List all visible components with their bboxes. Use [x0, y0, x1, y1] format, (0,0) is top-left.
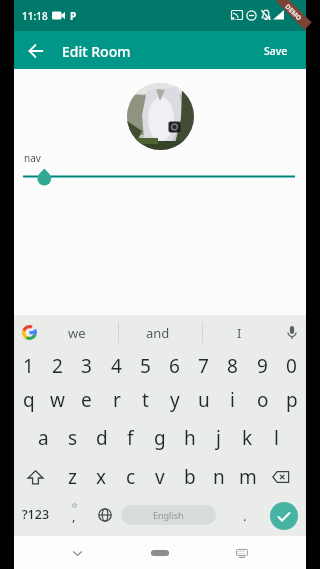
button[interactable]: k	[233, 420, 262, 455]
button[interactable]: n	[204, 459, 233, 495]
staticText: Save	[264, 44, 288, 58]
staticText: Edit Room	[62, 42, 131, 60]
staticText: 9	[257, 353, 268, 379]
button[interactable]: ?123	[21, 498, 51, 531]
staticText: g	[154, 425, 166, 451]
staticText: j	[216, 425, 221, 451]
button[interactable]	[266, 461, 296, 493]
staticText: l	[274, 425, 279, 451]
staticText: 4	[111, 353, 122, 379]
staticText: b	[184, 464, 196, 490]
staticText: 8	[227, 353, 238, 379]
button[interactable]: 2	[43, 349, 72, 382]
button[interactable]: 9	[248, 349, 277, 382]
button[interactable]	[91, 500, 119, 530]
button[interactable]: 5	[131, 349, 160, 382]
staticText: English	[153, 509, 184, 521]
button[interactable]: b	[175, 459, 204, 495]
staticText: DEMO	[283, 2, 304, 23]
staticText: and	[146, 324, 170, 342]
button[interactable]: q	[14, 382, 43, 417]
button[interactable]: x	[87, 459, 116, 495]
button[interactable]: c	[116, 459, 145, 495]
staticText: u	[198, 387, 210, 413]
button[interactable]: w	[43, 382, 72, 417]
button[interactable]	[278, 318, 306, 347]
button[interactable]	[21, 165, 297, 189]
button[interactable]: m	[233, 459, 262, 495]
button[interactable]: 8	[218, 349, 247, 382]
button[interactable]: z	[58, 459, 87, 495]
staticText: 5	[140, 353, 151, 379]
button[interactable]: 1	[14, 349, 43, 382]
button[interactable]: l	[262, 420, 291, 455]
button[interactable]: 0	[277, 349, 306, 382]
staticText: ?123	[22, 506, 50, 523]
staticText: 1	[23, 353, 34, 379]
button[interactable]	[270, 502, 298, 530]
button[interactable]: r	[102, 382, 131, 417]
staticText: q	[23, 387, 35, 413]
staticText: 2	[52, 353, 63, 379]
button[interactable]: d	[87, 420, 116, 455]
button[interactable]: we	[51, 318, 103, 347]
staticText: nav	[24, 151, 41, 164]
staticText: x	[96, 464, 107, 490]
staticText: we	[68, 324, 86, 342]
button[interactable]: 6	[160, 349, 189, 382]
button[interactable]	[64, 540, 90, 566]
staticText: w	[50, 387, 65, 413]
button[interactable]	[127, 83, 194, 150]
button[interactable]: p	[277, 382, 306, 417]
staticText: 3	[81, 353, 92, 379]
button[interactable]: ,	[62, 498, 86, 534]
button[interactable]: u	[189, 382, 218, 417]
staticText: k	[242, 425, 253, 451]
button[interactable]: 7	[189, 349, 218, 382]
button[interactable]: v	[145, 459, 174, 495]
staticText: 11:18	[22, 9, 48, 23]
button[interactable]: 3	[72, 349, 101, 382]
staticText: f	[127, 425, 134, 451]
staticText: m	[239, 464, 257, 490]
staticText: h	[184, 425, 196, 451]
staticText: c	[126, 464, 136, 490]
button[interactable]: .	[232, 498, 258, 534]
staticText: 7	[198, 353, 209, 379]
button[interactable]: h	[175, 420, 204, 455]
button[interactable]: and	[125, 318, 191, 347]
button[interactable]	[151, 550, 169, 556]
staticText: p	[286, 387, 298, 413]
button[interactable]	[229, 540, 255, 566]
staticText: 0	[286, 353, 297, 379]
button[interactable]: I	[206, 318, 272, 347]
staticText: o	[257, 387, 269, 413]
staticText: i	[230, 387, 235, 413]
button[interactable]: j	[204, 420, 233, 455]
button[interactable]	[20, 461, 50, 493]
button[interactable]: Save	[256, 41, 296, 60]
staticText: I	[237, 324, 242, 342]
staticText: 6	[169, 353, 180, 379]
button[interactable]	[15, 317, 43, 347]
button[interactable]: 4	[102, 349, 131, 382]
button[interactable]: f	[116, 420, 145, 455]
button[interactable]: a	[29, 420, 58, 455]
staticText: r	[113, 387, 121, 413]
button[interactable]: t	[131, 382, 160, 417]
button[interactable]	[22, 37, 50, 65]
button[interactable]: y	[160, 382, 189, 417]
staticText: v	[155, 464, 165, 490]
staticText: P	[70, 9, 77, 23]
button[interactable]: s	[58, 420, 87, 455]
button[interactable]: i	[218, 382, 247, 417]
staticText: ,	[72, 507, 76, 525]
button[interactable]: English	[121, 505, 216, 525]
staticText: t	[142, 387, 149, 413]
staticText: s	[68, 425, 78, 451]
staticText: z	[68, 464, 77, 490]
staticText: e	[81, 387, 92, 413]
button[interactable]: e	[72, 382, 101, 417]
button[interactable]: o	[248, 382, 277, 417]
button[interactable]: g	[145, 420, 174, 455]
